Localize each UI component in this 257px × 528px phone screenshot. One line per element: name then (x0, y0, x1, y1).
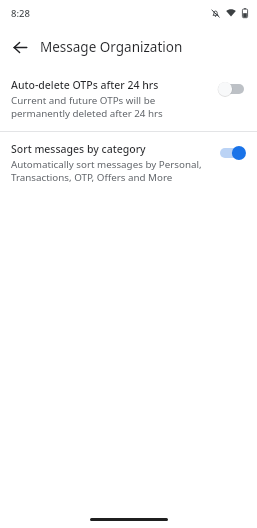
staticText: 8:28 (11, 7, 30, 20)
button[interactable]: Auto-delete OTPs after 24 hrs (0, 68, 257, 131)
staticText: Auto-delete OTPs after 24 hrs (11, 78, 159, 92)
staticText: Current and future OTPs will be permanen… (11, 94, 209, 120)
staticText: Message Organization (40, 38, 183, 56)
button[interactable]: Off (217, 81, 247, 97)
button[interactable]: On (217, 145, 247, 161)
button[interactable]: Back (8, 35, 32, 59)
staticText: Sort messages by category (11, 142, 146, 156)
staticText: Automatically sort messages by Personal,… (11, 158, 209, 184)
button[interactable]: Sort messages by category (0, 132, 257, 195)
